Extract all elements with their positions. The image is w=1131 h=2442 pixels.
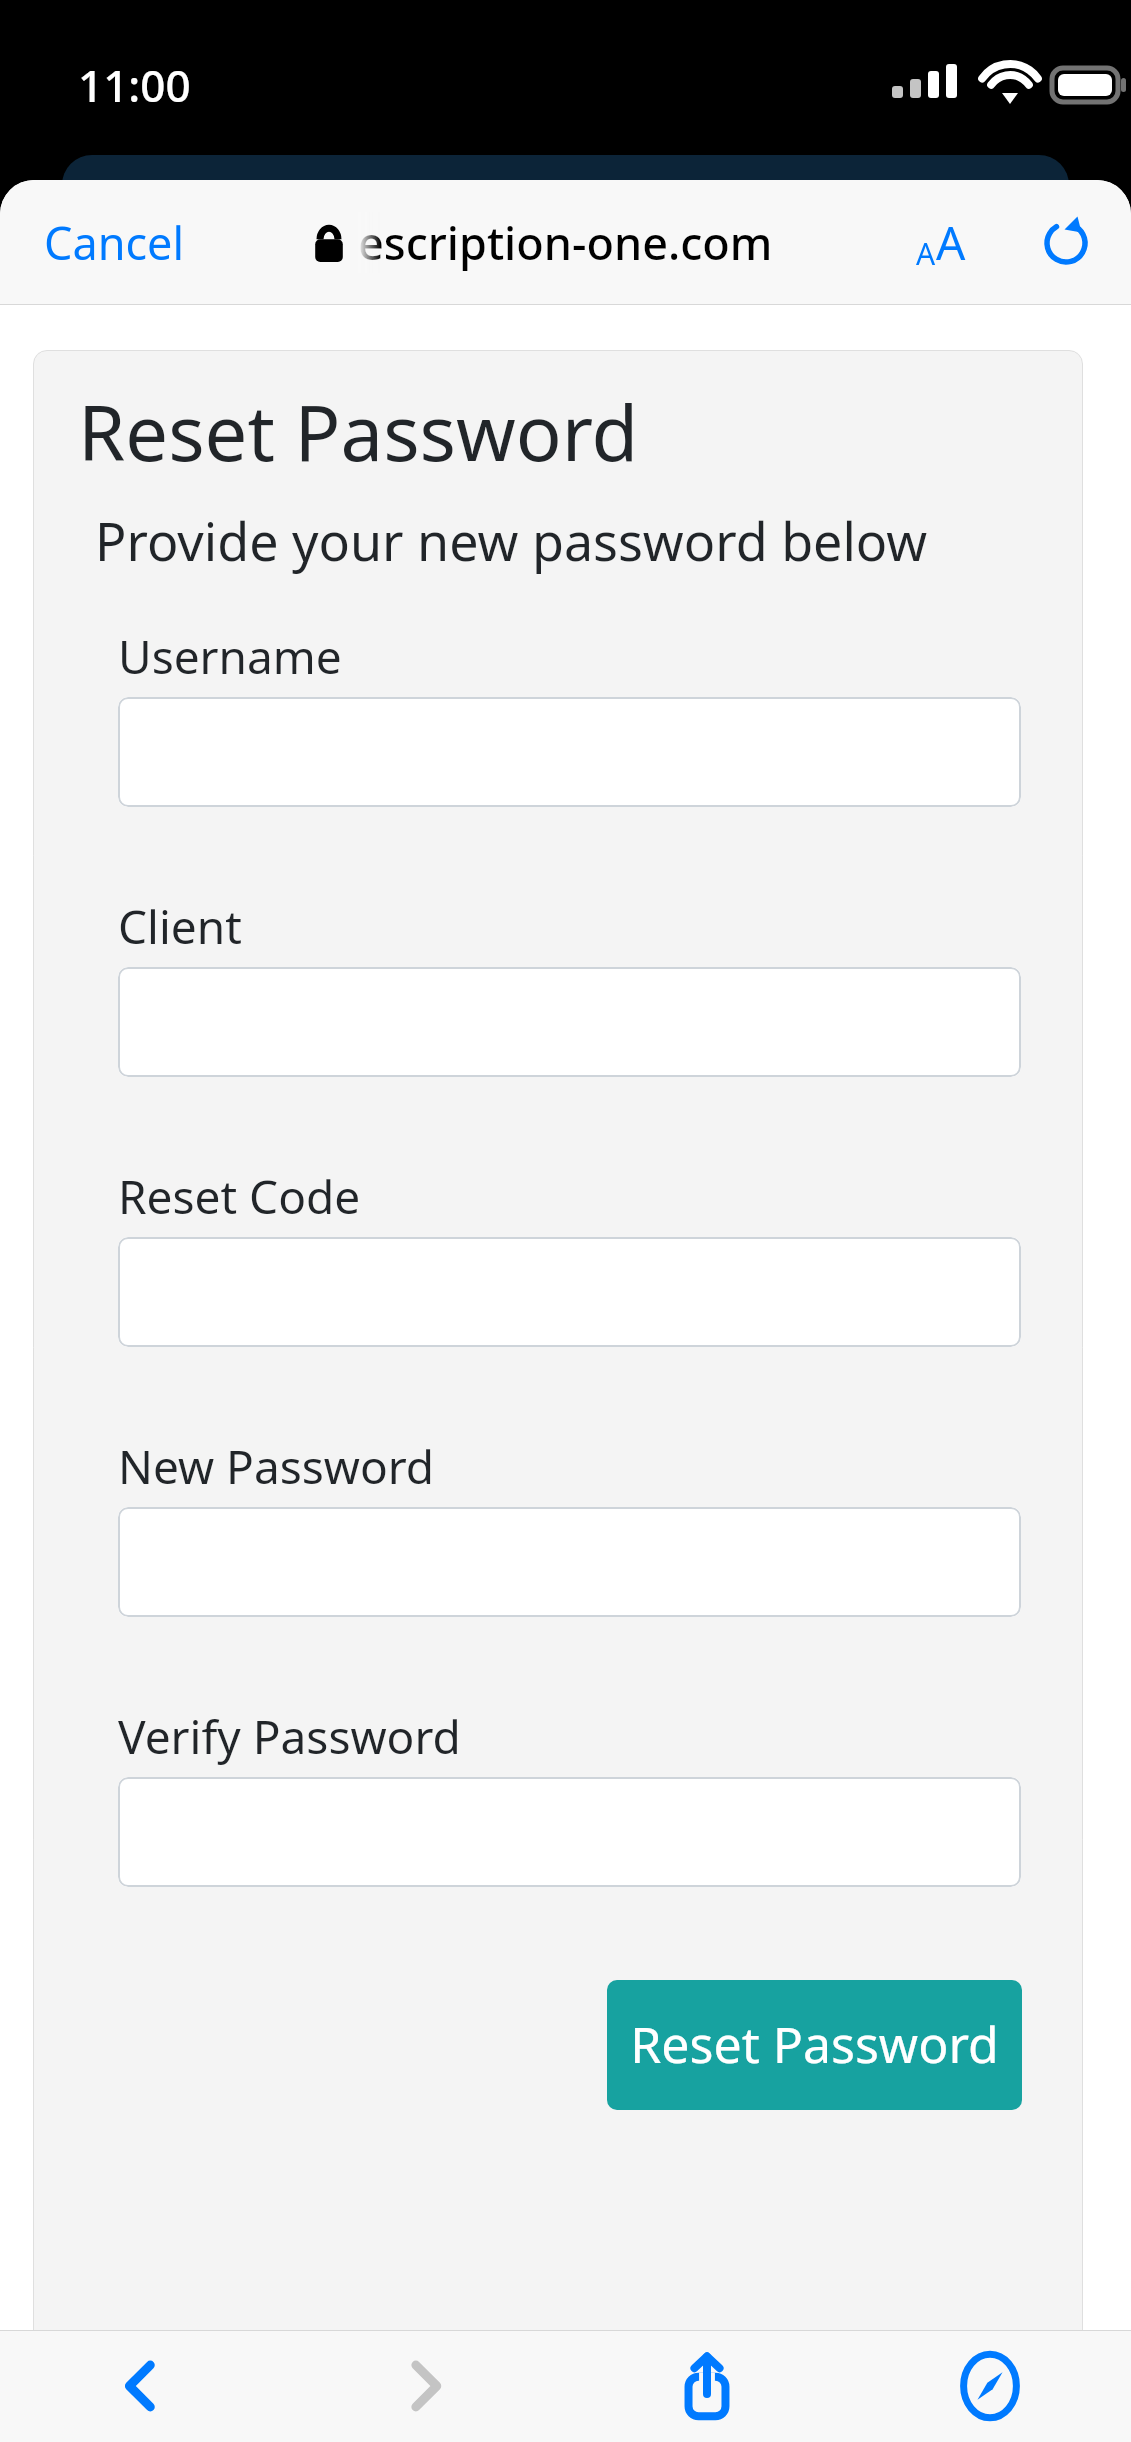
staticText: Username [118, 625, 342, 688]
button[interactable]: Share [565, 2330, 848, 2442]
button[interactable]: Reload [1033, 210, 1099, 276]
button[interactable]: Text size [906, 201, 976, 284]
staticText: Provide your new password below [95, 505, 928, 576]
staticText: Verify Password [118, 1705, 461, 1768]
staticText: A [916, 233, 936, 274]
staticText: Reset Password [78, 380, 639, 484]
button[interactable]: Forward [282, 2330, 565, 2442]
button[interactable] [118, 967, 1021, 1077]
button[interactable]: Cancel [30, 202, 199, 283]
staticText: Client [118, 895, 242, 958]
button[interactable] [118, 1507, 1021, 1617]
button[interactable] [118, 1237, 1021, 1347]
staticText: New Password [118, 1435, 435, 1498]
staticText: Cancel [44, 212, 185, 273]
button[interactable]: Reset Password [607, 1980, 1022, 2110]
button[interactable]: Open in Safari [848, 2330, 1131, 2442]
button[interactable]: Back [0, 2330, 282, 2442]
staticText: Reset Code [118, 1165, 361, 1228]
staticText: A [936, 211, 966, 274]
staticText: 11:00 [78, 55, 191, 115]
button[interactable] [118, 1777, 1021, 1887]
button[interactable] [118, 697, 1021, 807]
staticText: escription-one.com [358, 212, 773, 273]
staticText: Reset Password [630, 2010, 999, 2078]
